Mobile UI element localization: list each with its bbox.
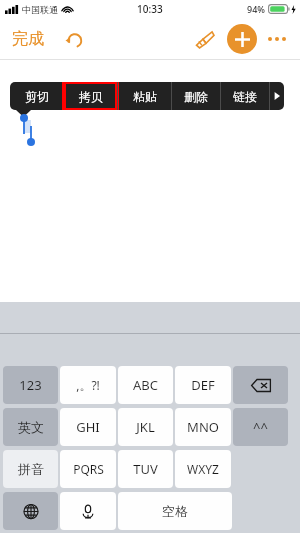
button[interactable]: JKL xyxy=(118,408,173,446)
staticText: 英文 xyxy=(18,419,44,435)
staticText: 粘贴 xyxy=(133,89,157,104)
button[interactable]: 链接 xyxy=(221,82,269,110)
button[interactable]: 完成 xyxy=(12,29,44,49)
button[interactable]: 剪切 xyxy=(10,82,63,110)
staticText: ABC xyxy=(133,376,158,394)
staticText: 拼音 xyxy=(18,461,44,477)
staticText: 剪切 xyxy=(25,89,49,104)
staticText: MNO xyxy=(187,418,219,436)
staticText: ^^ xyxy=(253,418,268,436)
staticText: TUV xyxy=(133,460,158,478)
staticText: 链接 xyxy=(233,89,257,104)
button[interactable]: 粘贴 xyxy=(118,82,171,110)
staticText: ,。?! xyxy=(76,377,100,393)
staticText: 94% xyxy=(247,3,265,15)
button[interactable]: Switch keyboard xyxy=(3,492,58,530)
button[interactable]: 英文 xyxy=(3,408,58,446)
button[interactable]: PQRS xyxy=(60,450,116,488)
button[interactable]: 删除 xyxy=(172,82,220,110)
button[interactable]: Backspace xyxy=(233,366,288,404)
button[interactable]: MNO xyxy=(175,408,231,446)
staticText: DEF xyxy=(191,376,215,394)
button[interactable]: ,。?! xyxy=(60,366,116,404)
button[interactable]: 123 xyxy=(3,366,58,404)
staticText: 删除 xyxy=(184,89,208,104)
button[interactable]: More options xyxy=(263,25,291,53)
staticText: 123 xyxy=(19,376,42,394)
button[interactable]: WXYZ xyxy=(175,450,231,488)
staticText: 拷贝 xyxy=(79,89,103,104)
staticText: 完成 xyxy=(12,29,44,49)
button[interactable]: GHI xyxy=(60,408,116,446)
button[interactable]: Brush xyxy=(190,25,218,53)
button[interactable]: ^^ xyxy=(233,408,288,446)
button[interactable]: Undo xyxy=(60,25,88,53)
button[interactable]: More xyxy=(270,82,284,110)
button[interactable]: DEF xyxy=(175,366,231,404)
button[interactable]: TUV xyxy=(118,450,173,488)
staticText: WXYZ xyxy=(187,461,219,477)
button[interactable]: 拼音 xyxy=(3,450,58,488)
staticText: JKL xyxy=(136,418,155,436)
button[interactable]: ABC xyxy=(118,366,173,404)
staticText: 中国联通 xyxy=(22,4,58,15)
staticText: 空格 xyxy=(162,503,188,519)
button[interactable]: Voice input xyxy=(60,492,116,530)
staticText: PQRS xyxy=(73,461,104,477)
button[interactable]: 拷贝 xyxy=(64,82,117,110)
staticText: GHI xyxy=(76,418,100,436)
staticText: 10:33 xyxy=(137,2,163,16)
button[interactable]: Add xyxy=(227,24,257,54)
button[interactable]: 空格 xyxy=(118,492,232,530)
